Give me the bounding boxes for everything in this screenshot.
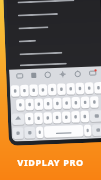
button[interactable]: spiderman theatre [12, 45, 99, 60]
button[interactable]: brown recluse spider [13, 58, 99, 70]
button[interactable]: Keyboard settings [12, 69, 26, 83]
other: spider [19, 40, 36, 42]
other: spiderman theatre [19, 52, 62, 55]
button[interactable]: Clipboard [26, 69, 40, 82]
button[interactable]: On-screen keyboard [9, 79, 101, 142]
button[interactable]: GIF [55, 67, 70, 81]
button[interactable]: spiderman [11, 19, 98, 34]
button[interactable]: spider [12, 32, 98, 47]
button[interactable]: Sticker [70, 67, 85, 80]
other: brown recluse spider [20, 63, 67, 66]
button[interactable]: spider solitaire [11, 6, 97, 21]
button[interactable]: spider man no way home [10, 0, 97, 8]
button[interactable]: Emoji [40, 68, 55, 82]
other: spider solitaire [18, 13, 58, 16]
other: spiderman [18, 26, 48, 29]
staticText: VIDPLAY PRO [0, 156, 101, 168]
button[interactable]: More options [85, 66, 100, 80]
other: spider man no way home [17, 0, 74, 3]
